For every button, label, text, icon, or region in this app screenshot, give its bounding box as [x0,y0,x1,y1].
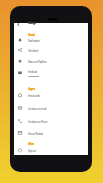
button[interactable]: How it works [14,90,88,100]
staticText: Support [28,87,35,91]
staticText: Tell a friend [28,49,39,53]
staticText: Settings [28,21,36,25]
staticText: Support [28,87,35,91]
other: Back [15,23,21,29]
staticText: Contact us on email [28,107,47,111]
button[interactable]: Rate us on PlayStore [14,56,88,66]
button[interactable]: Feedback [14,68,88,78]
button[interactable]: Notifications [14,35,88,45]
button[interactable]: Sign out [14,145,88,155]
staticText: Sign out [28,149,36,153]
button[interactable]: Contact us on email [14,103,88,113]
staticText: Settings [28,21,36,25]
staticText: Rate us on PlayStore [28,60,47,64]
staticText: Others [28,142,34,146]
staticText: General [28,33,34,37]
staticText: What an idea sirji !! [28,75,39,78]
staticText: How it works [28,94,40,98]
button[interactable]: Visit our Website [14,128,88,138]
button[interactable]: Tell a friend [14,45,88,55]
staticText: Feedback [28,70,38,74]
staticText: Notifications [28,39,40,43]
staticText: General [28,33,34,37]
staticText: Contact us on Phone [28,120,48,124]
button[interactable]: Contact us on Phone [14,116,88,126]
staticText: Visit our Website [28,132,44,136]
button[interactable]: Back [14,23,88,29]
staticText: Settings [28,21,36,25]
staticText: What an idea sirji !! [28,75,39,78]
staticText: Others [28,142,34,146]
staticText: What an idea sirji !! [28,75,39,78]
